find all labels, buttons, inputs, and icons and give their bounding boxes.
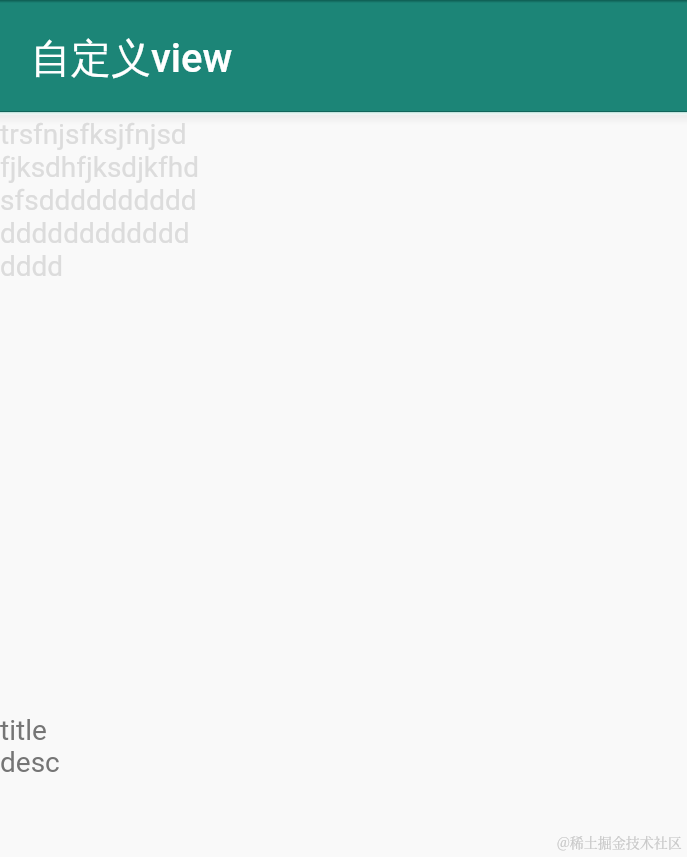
button[interactable]: 自定义view: [0, 0, 687, 112]
staticText: @稀土掘金技术社区: [557, 832, 682, 852]
staticText: title: [0, 714, 47, 747]
button[interactable]: title: [0, 707, 687, 789]
staticText: trsfnjsfksjfnjsd fjksdhfjksdjkfhd sfsddd…: [0, 118, 199, 283]
staticText: 自定义view: [31, 33, 233, 83]
staticText: desc: [0, 746, 60, 779]
